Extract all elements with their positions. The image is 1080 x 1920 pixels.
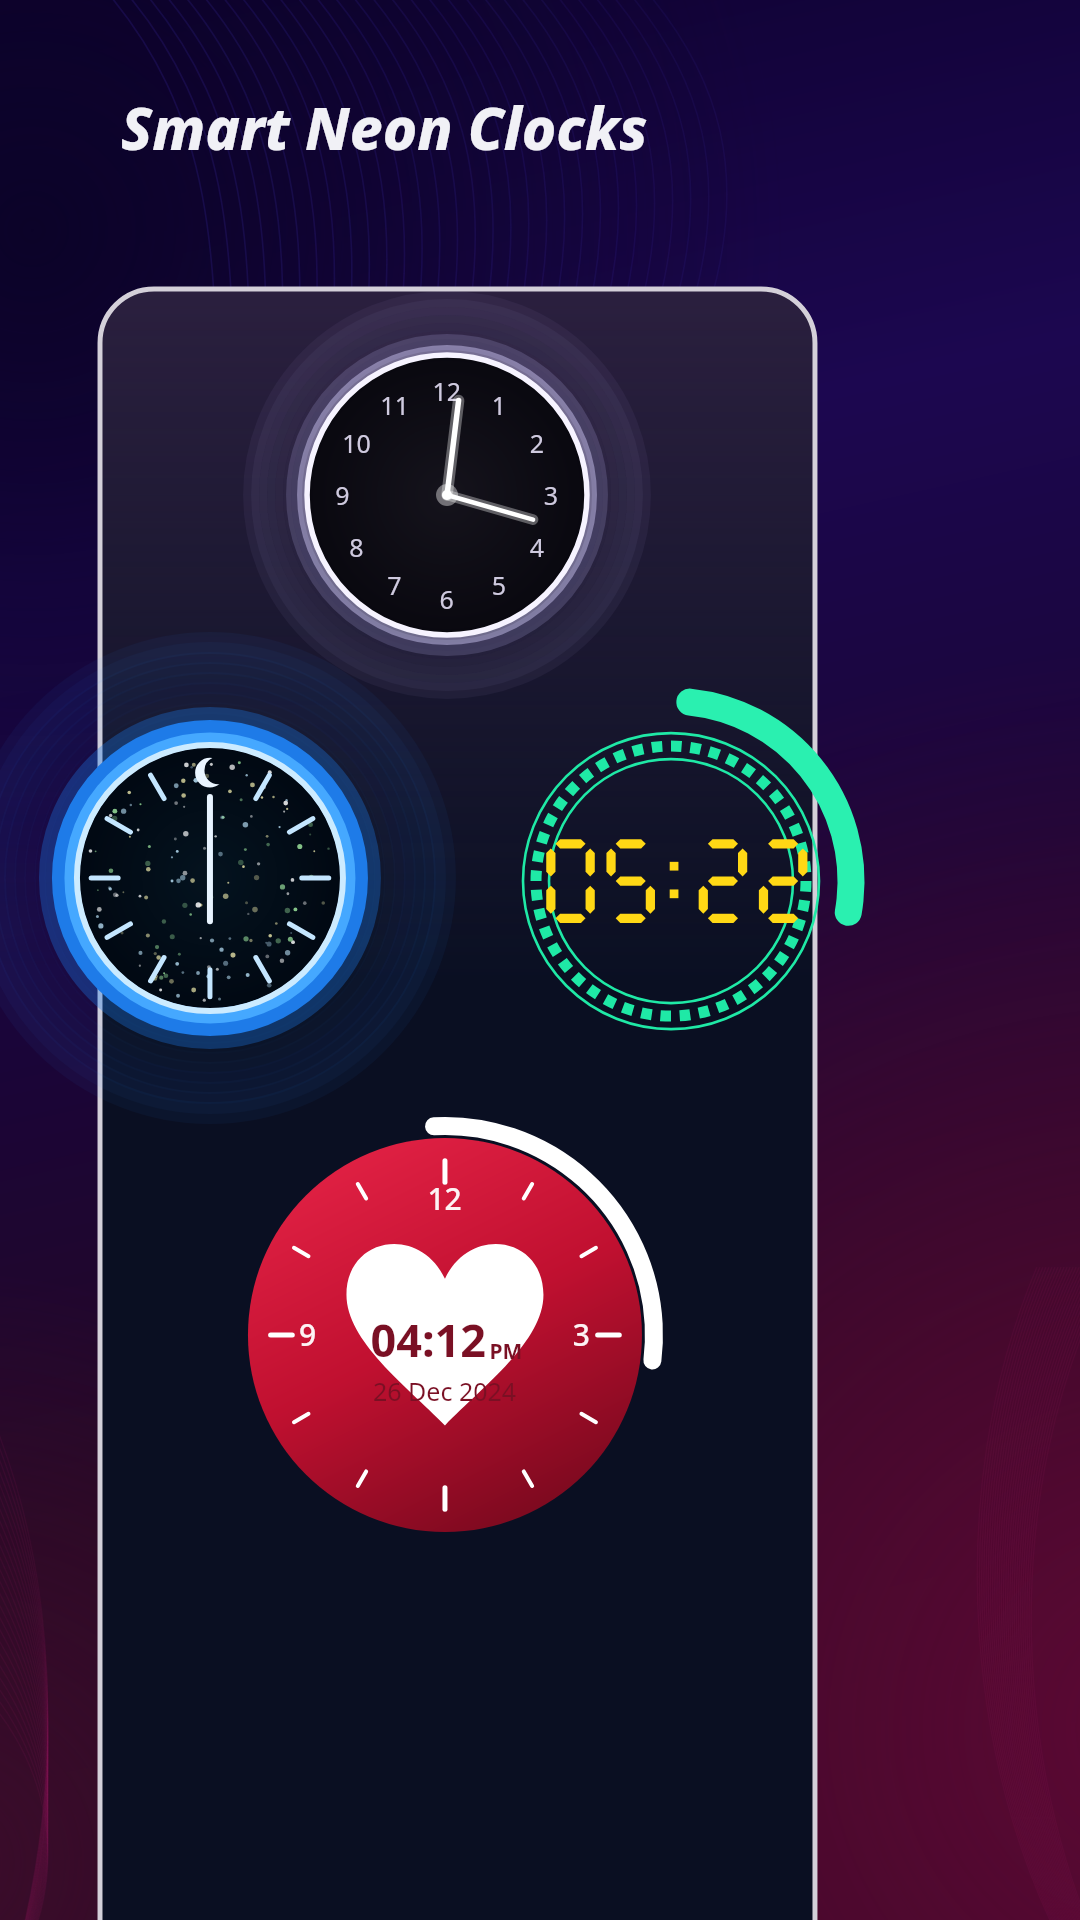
button[interactable]: Red heart clock, 04:12 PM, 26 Dec 2024 (248, 1137, 642, 1531)
button[interactable]: Green digital clock, 05:22 (536, 766, 806, 1036)
button[interactable]: White neon analog clock face (307, 245, 587, 525)
button[interactable]: Blue neon starfield clock face (75, 763, 345, 1033)
